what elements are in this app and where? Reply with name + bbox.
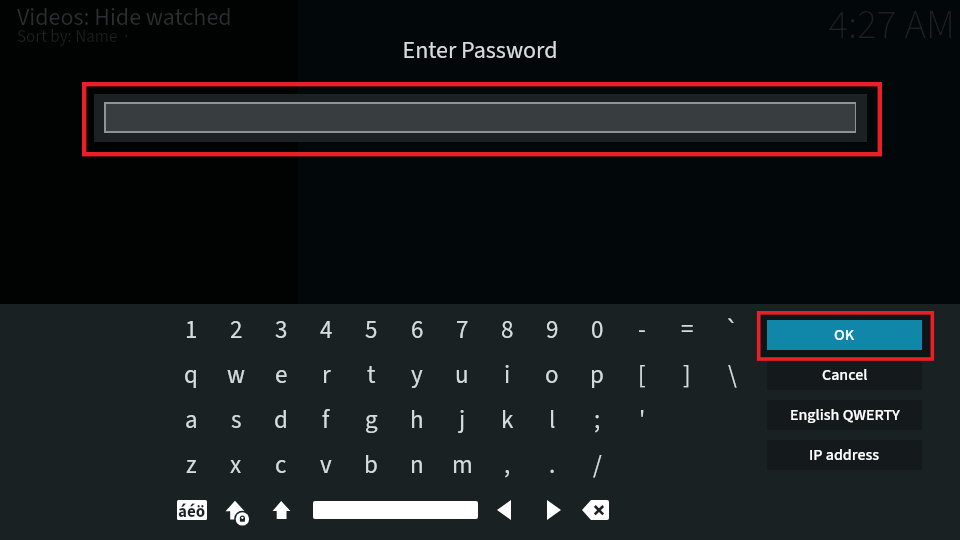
button[interactable]: 2: [214, 308, 258, 352]
button[interactable]: /: [575, 443, 619, 487]
staticText: n: [410, 447, 424, 483]
button[interactable]: b: [349, 443, 393, 487]
button[interactable]: 9: [530, 308, 574, 352]
button[interactable]: t: [349, 353, 393, 397]
staticText: English QWERTY: [790, 404, 900, 427]
staticText: `: [725, 312, 739, 348]
staticText: 7: [456, 312, 469, 348]
button[interactable]: Move cursor left: [497, 500, 512, 520]
staticText: i: [504, 357, 511, 393]
button[interactable]: s: [214, 398, 258, 442]
staticText: a: [185, 402, 198, 438]
staticText: \: [728, 357, 737, 393]
button[interactable]: 5: [349, 308, 393, 352]
button[interactable]: .: [530, 443, 574, 487]
staticText: r: [322, 357, 331, 393]
staticText: Sort by: Name ·: [17, 25, 129, 49]
button[interactable]: z: [169, 443, 213, 487]
button[interactable]: u: [440, 353, 484, 397]
button[interactable]: -: [620, 308, 664, 352]
button[interactable]: 7: [440, 308, 484, 352]
button[interactable]: Cancel: [767, 360, 922, 390]
button[interactable]: ]: [665, 353, 709, 397]
button[interactable]: n: [395, 443, 439, 487]
button[interactable]: [: [620, 353, 664, 397]
button[interactable]: m: [440, 443, 484, 487]
staticText: j: [459, 402, 466, 438]
button[interactable]: p: [575, 353, 619, 397]
staticText: IP address: [809, 444, 880, 467]
button[interactable]: Caps lock: [224, 499, 250, 523]
button[interactable]: 4: [304, 308, 348, 352]
staticText: Videos: Hide watched: [17, 0, 232, 34]
staticText: z: [186, 447, 197, 483]
staticText: e: [275, 357, 288, 393]
staticText: =: [681, 312, 694, 348]
staticText: 2: [230, 312, 243, 348]
button[interactable]: v: [304, 443, 348, 487]
staticText: áéö: [178, 500, 206, 520]
staticText: w: [227, 357, 245, 393]
button[interactable]: c: [259, 443, 303, 487]
staticText: OK: [834, 324, 855, 347]
staticText: c: [275, 447, 287, 483]
button[interactable]: h: [395, 398, 439, 442]
staticText: [: [638, 357, 646, 393]
staticText: q: [184, 357, 198, 393]
button[interactable]: =: [665, 308, 709, 352]
staticText: 0: [591, 312, 604, 348]
button[interactable]: l: [530, 398, 574, 442]
button[interactable]: w: [214, 353, 258, 397]
button[interactable]: a: [169, 398, 213, 442]
button[interactable]: Space: [313, 501, 478, 519]
staticText: m: [452, 447, 473, 483]
button[interactable]: i: [485, 353, 529, 397]
button[interactable]: ,: [485, 443, 529, 487]
button[interactable]: j: [440, 398, 484, 442]
button[interactable]: d: [259, 398, 303, 442]
staticText: v: [320, 447, 332, 483]
button[interactable]: Backspace: [582, 500, 609, 520]
button[interactable]: y: [395, 353, 439, 397]
staticText: h: [410, 402, 424, 438]
button[interactable]: x: [214, 443, 258, 487]
button[interactable]: ': [620, 398, 664, 442]
button[interactable]: 6: [395, 308, 439, 352]
button[interactable]: 1: [169, 308, 213, 352]
button[interactable]: 3: [259, 308, 303, 352]
staticText: g: [365, 402, 378, 438]
button[interactable]: 0: [575, 308, 619, 352]
staticText: ': [639, 402, 646, 438]
staticText: 1: [185, 312, 198, 348]
button[interactable]: k: [485, 398, 529, 442]
button[interactable]: e: [259, 353, 303, 397]
button[interactable]: \: [710, 353, 754, 397]
button[interactable]: r: [304, 353, 348, 397]
button[interactable]: IP address: [767, 440, 922, 470]
button[interactable]: English QWERTY: [767, 400, 922, 430]
button[interactable]: `: [710, 308, 754, 352]
staticText: ;: [594, 402, 601, 438]
staticText: k: [501, 402, 514, 438]
button[interactable]: [94, 94, 867, 142]
staticText: Cancel: [822, 364, 868, 387]
button[interactable]: f: [304, 398, 348, 442]
staticText: .: [549, 447, 556, 483]
staticText: -: [638, 312, 646, 348]
staticText: b: [364, 447, 378, 483]
button[interactable]: Move cursor right: [546, 500, 561, 520]
staticText: d: [274, 402, 288, 438]
button[interactable]: OK: [767, 320, 922, 350]
button[interactable]: q: [169, 353, 213, 397]
staticText: p: [590, 357, 604, 393]
staticText: Enter Password: [0, 33, 960, 67]
button[interactable]: ;: [575, 398, 619, 442]
staticText: 8: [501, 312, 514, 348]
button[interactable]: Shift: [271, 500, 291, 520]
staticText: f: [322, 402, 330, 438]
button[interactable]: áéö: [177, 500, 207, 520]
button[interactable]: g: [349, 398, 393, 442]
button[interactable]: 8: [485, 308, 529, 352]
staticText: o: [545, 357, 559, 393]
button[interactable]: o: [530, 353, 574, 397]
